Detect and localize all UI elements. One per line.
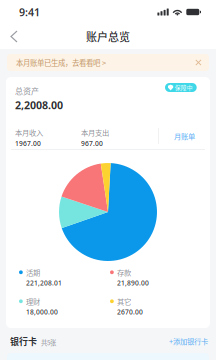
staticText: +添加银行卡 [169,336,208,346]
staticText: 本月支出 [81,127,109,138]
staticText: 21,890.00 [117,279,149,287]
staticText: 存款 [117,267,131,278]
button[interactable]: +添加银行卡 [169,336,208,346]
staticText: 总资产 [15,85,39,97]
staticText: 221,208.01 [26,279,62,287]
staticText: 银行卡 [10,334,37,347]
staticText: 月账单 [174,131,195,141]
staticText: 保障中 [175,83,193,92]
button[interactable]: 本月账单已生成，去看看吧 > [7,54,209,71]
staticText: 18,000.00 [26,308,58,316]
button[interactable]: 月账单 [161,127,208,145]
staticText: 2,2008.00 [15,98,63,112]
staticText: 2670.00 [117,308,143,316]
staticText: 本月账单已生成，去看看吧 > [16,57,106,68]
staticText: 本月收入 [15,127,43,138]
staticText: 9:41 [19,5,40,19]
staticText: 账户总览 [86,28,130,44]
staticText: 1967.00 [15,139,41,148]
staticText: 共5张 [41,338,56,347]
staticText: 967.00 [81,139,103,148]
staticText: 活期 [26,267,40,278]
button[interactable]: Back [0,25,25,48]
staticText: 理财 [26,296,40,307]
staticText: 其它 [117,296,131,307]
